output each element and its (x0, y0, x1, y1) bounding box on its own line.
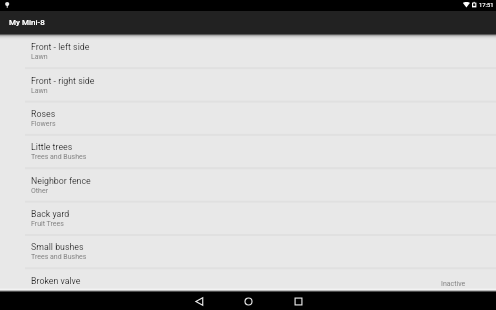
button[interactable]: Back yard (0, 201, 496, 234)
button[interactable]: Recent apps (281, 288, 315, 310)
staticText: Inactive (441, 280, 466, 288)
staticText: Fruit Trees (31, 220, 64, 228)
staticText: Other (31, 187, 49, 195)
button[interactable]: Front - right side (0, 68, 496, 101)
staticText: Trees and Bushes (31, 153, 87, 161)
staticText: Lawn (31, 87, 48, 95)
staticText: Small bushes (31, 242, 84, 252)
button[interactable]: My Mini-8 (0, 11, 496, 34)
button[interactable]: Back (182, 288, 216, 310)
staticText: Neighbor fence (31, 176, 91, 186)
button[interactable]: Neighbor fence (0, 168, 496, 201)
button[interactable]: Roses (0, 101, 496, 134)
button[interactable]: Little trees (0, 134, 496, 167)
staticText: Broken valve (31, 276, 81, 286)
button[interactable]: Home (231, 288, 265, 310)
staticText: Trees and Bushes (31, 253, 87, 261)
staticText: My Mini-8 (9, 18, 45, 27)
staticText: Lawn (31, 287, 48, 295)
staticText: Roses (31, 109, 56, 119)
staticText: Little trees (31, 142, 73, 152)
staticText: Front - right side (31, 76, 95, 86)
button[interactable]: Broken valve (0, 268, 496, 301)
button[interactable]: Front - left side (0, 34, 496, 67)
staticText: Front - left side (31, 42, 90, 52)
button[interactable]: Small bushes (0, 234, 496, 267)
staticText: Back yard (31, 209, 70, 219)
staticText: Flowers (31, 120, 56, 128)
staticText: Lawn (31, 53, 48, 61)
staticText: 17:51 (479, 2, 494, 9)
